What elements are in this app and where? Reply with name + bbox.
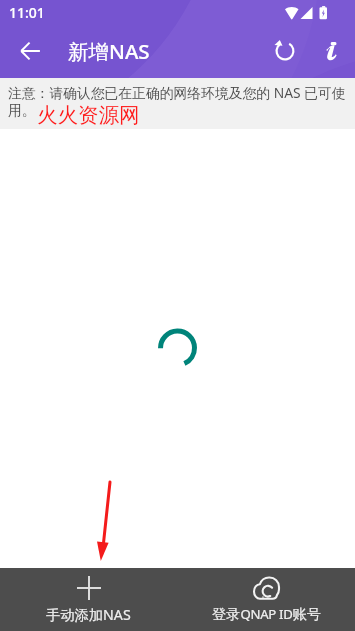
staticText: 11:01 (9, 3, 45, 22)
staticText: 注意：请确认您已在正确的网络环境及您的 NAS 已可使用。 (8, 83, 349, 120)
staticText: 新增NAS (68, 37, 150, 65)
button[interactable]: 登录QNAP ID账号 (177, 568, 355, 631)
button[interactable]: 手动添加NAS (0, 568, 177, 631)
button[interactable]: Refresh (263, 24, 307, 78)
button[interactable]: Info (307, 24, 355, 78)
staticText: 登录QNAP ID账号 (212, 605, 321, 623)
staticText: 火火资源网 (37, 102, 140, 128)
staticText: 手动添加NAS (46, 605, 131, 624)
button[interactable]: Back (4, 24, 56, 78)
